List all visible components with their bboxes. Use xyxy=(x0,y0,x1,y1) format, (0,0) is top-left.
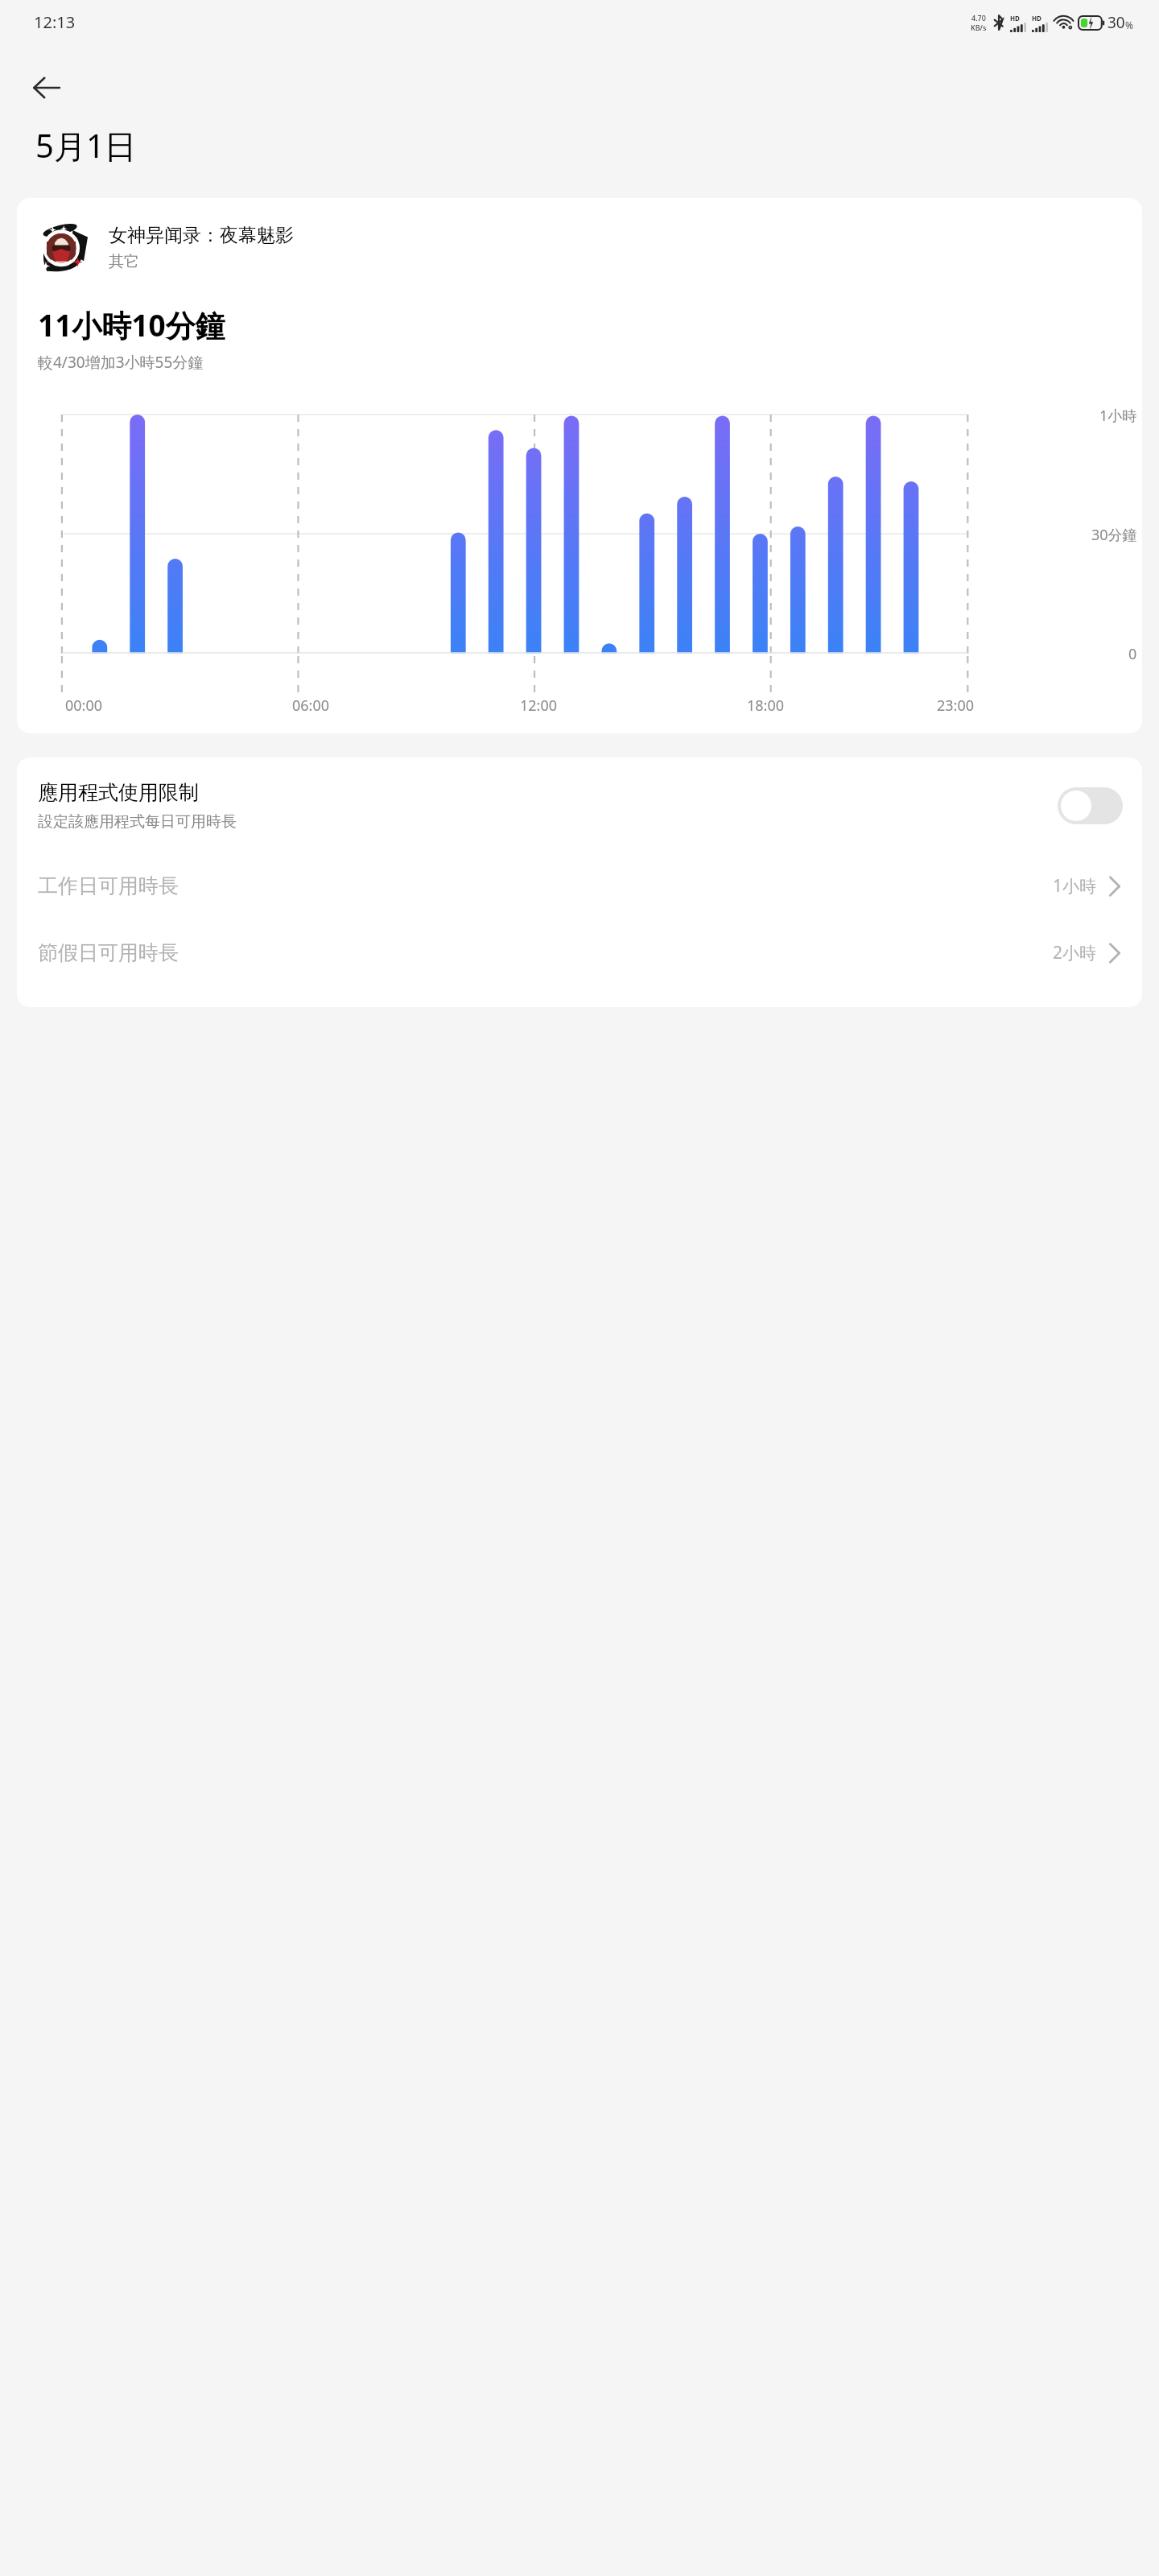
staticText: 較4/30增加3小時55分鐘 xyxy=(38,352,204,373)
staticText: 其它 xyxy=(109,252,139,271)
staticText: 06:00 xyxy=(292,696,330,716)
button[interactable]: 女神异闻录：夜幕魅影 xyxy=(17,219,1142,275)
staticText: KB/s xyxy=(971,23,987,32)
staticText: % xyxy=(1125,19,1133,31)
staticText: 30分鐘 xyxy=(1091,525,1137,545)
staticText: HD xyxy=(1032,14,1041,23)
staticText: 12:13 xyxy=(34,11,76,33)
staticText: 23:00 xyxy=(937,696,975,716)
button[interactable]: 工作日可用時長 xyxy=(17,852,1142,919)
staticText: 18:00 xyxy=(747,696,785,716)
staticText: 1小時 xyxy=(1099,406,1137,426)
staticText: 節假日可用時長 xyxy=(38,940,1053,965)
staticText: 5月1日 xyxy=(35,123,137,167)
button[interactable]: 節假日可用時長 xyxy=(17,919,1142,986)
staticText: 11小時10分鐘 xyxy=(38,304,225,345)
staticText: 4.70 xyxy=(971,13,986,23)
staticText: 應用程式使用限制 xyxy=(38,780,199,805)
button[interactable]: 應用程式使用限制 xyxy=(17,758,1142,852)
staticText: 0 xyxy=(1128,644,1137,664)
staticText: 00:00 xyxy=(65,696,103,716)
staticText: 設定該應用程式每日可用時長 xyxy=(38,812,237,832)
staticText: 2小時 xyxy=(1053,941,1097,964)
staticText: 女神异闻录：夜幕魅影 xyxy=(109,224,294,247)
staticText: 1小時 xyxy=(1053,874,1097,898)
staticText: HD xyxy=(1010,14,1020,23)
button[interactable]: App usage limit toggle xyxy=(1058,787,1123,824)
staticText: 30 xyxy=(1107,12,1125,33)
staticText: 12:00 xyxy=(520,696,558,716)
staticText: 工作日可用時長 xyxy=(38,873,1053,898)
button[interactable]: Back xyxy=(18,59,76,117)
